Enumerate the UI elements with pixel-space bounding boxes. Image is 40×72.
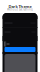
button[interactable] <box>2 28 37 36</box>
staticText: Dark Theme <box>8 4 31 9</box>
button[interactable] <box>2 47 37 52</box>
staticText: Without Everything <box>7 8 33 11</box>
button[interactable] <box>2 19 37 27</box>
